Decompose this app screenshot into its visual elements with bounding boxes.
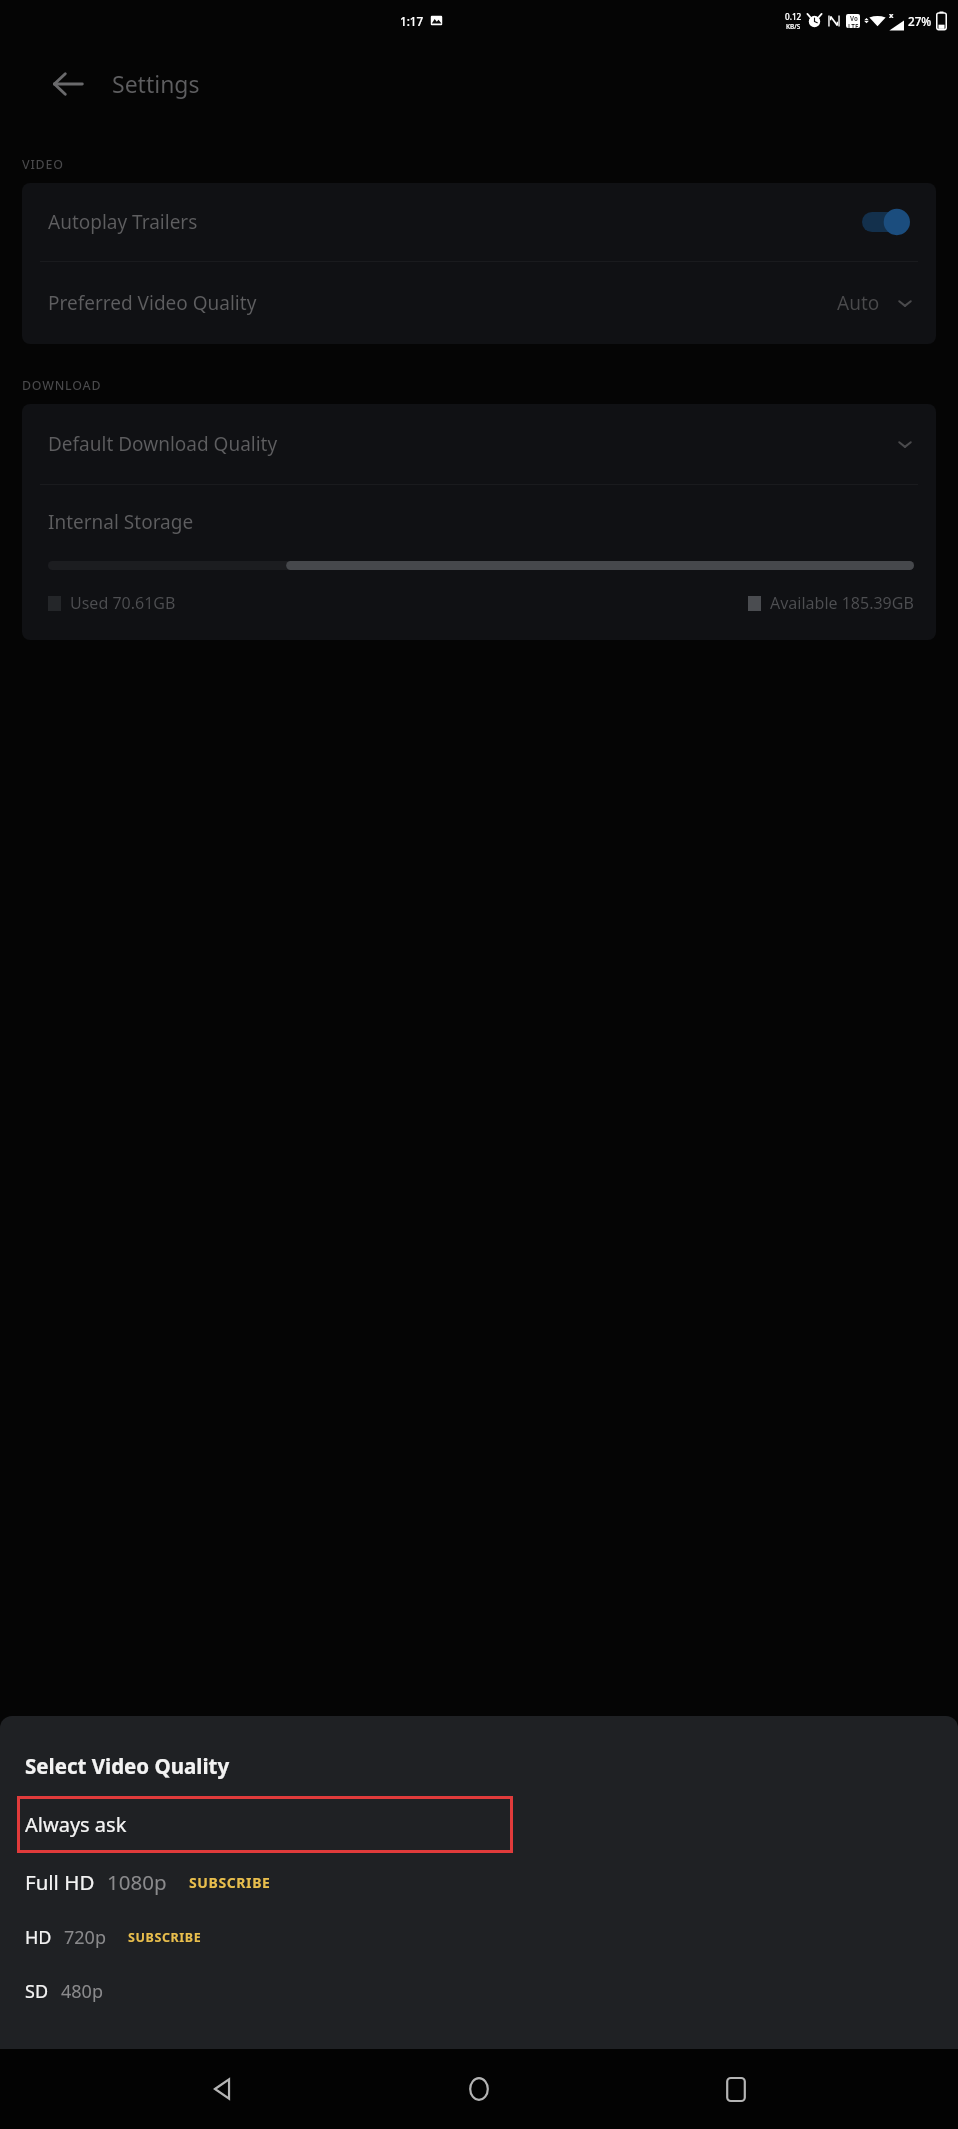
button[interactable]: Recents [701, 2054, 771, 2124]
staticText: Full HD [25, 1868, 95, 1896]
button[interactable]: Full HD [0, 1853, 958, 1911]
staticText: Always ask [25, 1811, 127, 1838]
button[interactable]: Preferred Video Quality [22, 262, 936, 344]
staticText: 27% [908, 13, 932, 29]
staticText: LTE [848, 22, 859, 28]
staticText: Used 70.61GB [70, 592, 176, 614]
staticText: Internal Storage [48, 509, 194, 535]
button[interactable]: Default Download Quality [22, 404, 936, 484]
staticText: 720p [64, 1925, 106, 1950]
button[interactable]: Back [36, 52, 100, 116]
staticText: Available 185.39GB [770, 592, 914, 614]
button[interactable]: Home [444, 2054, 514, 2124]
button[interactable]: SD [0, 1963, 958, 2019]
button[interactable]: HD [0, 1911, 958, 1963]
staticText: HD [25, 1925, 52, 1950]
staticText: 480p [61, 1979, 103, 2004]
staticText: Settings [112, 68, 200, 99]
staticText: SUBSCRIBE [189, 1873, 271, 1892]
staticText: Autoplay Trailers [48, 209, 198, 235]
staticText: Select Video Quality [25, 1752, 230, 1780]
staticText: x [889, 10, 894, 20]
button[interactable]: Back [187, 2054, 257, 2124]
staticText: 0.12 [785, 11, 802, 22]
staticText: SD [25, 1979, 49, 2004]
staticText: KB/S [786, 22, 801, 31]
button[interactable]: Internal Storage [22, 485, 936, 640]
button[interactable]: Always ask [17, 1796, 513, 1853]
staticText: 1080p [107, 1868, 167, 1896]
staticText: Auto [837, 290, 880, 316]
staticText: DOWNLOAD [22, 377, 102, 394]
staticText: Preferred Video Quality [48, 290, 257, 316]
staticText: VIDEO [22, 156, 64, 173]
button[interactable]: Autoplay Trailers [22, 183, 936, 261]
staticText: SUBSCRIBE [128, 1929, 202, 1946]
staticText: 1:17 [400, 13, 424, 29]
staticText: Default Download Quality [48, 431, 278, 457]
staticText: Vo [850, 14, 858, 22]
